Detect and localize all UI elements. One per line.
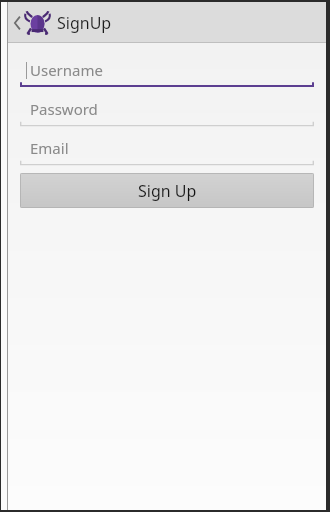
- staticText: Sign Up: [138, 180, 197, 202]
- button[interactable]: Navigate up: [10, 9, 326, 36]
- button[interactable]: Email: [20, 135, 314, 166]
- staticText: SignUp: [57, 12, 112, 34]
- button[interactable]: Username: [20, 57, 314, 88]
- button[interactable]: Sign Up: [20, 173, 314, 208]
- staticText: Username: [30, 60, 103, 80]
- staticText: Email: [30, 138, 69, 158]
- button[interactable]: Password: [20, 96, 314, 127]
- staticText: Password: [30, 99, 98, 119]
